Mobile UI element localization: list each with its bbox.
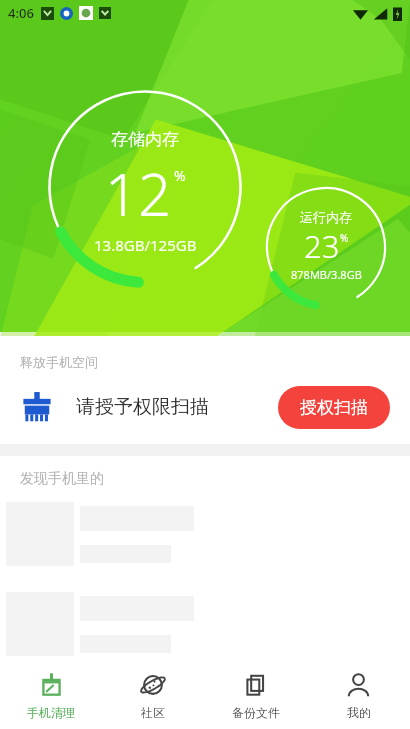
staticText: 手机清理 — [27, 705, 75, 720]
staticText: 发现手机里的 — [20, 470, 104, 488]
staticText: 存储内存 — [111, 129, 179, 150]
button[interactable]: 社区 — [102, 662, 204, 729]
staticText: % — [340, 231, 349, 245]
button[interactable]: 授权扫描 — [278, 386, 390, 429]
staticText: 我的 — [347, 705, 371, 720]
staticText: 13.8GB/125GB — [94, 235, 197, 255]
staticText: % — [174, 166, 186, 185]
staticText: 社区 — [141, 705, 165, 720]
staticText: 请授予权限扫描 — [76, 395, 209, 419]
staticText: 878MB/3.8GB — [291, 267, 362, 282]
staticText: 23 — [304, 225, 340, 267]
staticText: 运行内存 — [300, 209, 352, 225]
staticText: 4:06 — [8, 4, 34, 22]
staticText: 12 — [105, 154, 172, 233]
staticText: 授权扫描 — [300, 397, 368, 418]
button[interactable]: 手机清理 — [0, 662, 102, 729]
button[interactable]: 我的 — [307, 662, 410, 729]
staticText: 释放手机空间 — [20, 354, 98, 370]
button[interactable]: 备份文件 — [204, 662, 307, 729]
staticText: 备份文件 — [232, 705, 280, 720]
